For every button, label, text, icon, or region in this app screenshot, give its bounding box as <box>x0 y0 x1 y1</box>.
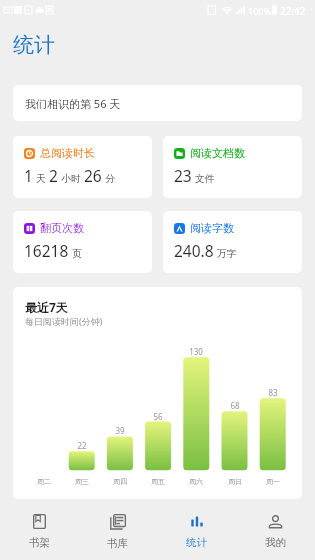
staticText: 天 <box>36 173 46 185</box>
staticText: 22 <box>77 440 87 451</box>
staticText: 阅读文档数 <box>190 146 245 160</box>
staticText: 83 <box>268 387 278 398</box>
staticText: 周五 <box>151 477 165 486</box>
other: 书库 <box>110 514 126 530</box>
staticText: 最近7天 <box>25 299 68 315</box>
staticText: 分 <box>105 173 115 185</box>
staticText: 16218 <box>24 240 69 261</box>
staticText: 小时 <box>61 173 81 185</box>
button[interactable]: 书架 <box>0 499 78 560</box>
staticText: 26 <box>84 165 102 186</box>
staticText: 39 <box>115 425 125 436</box>
staticText: 68 <box>230 400 240 411</box>
button[interactable]: 书库 <box>78 499 157 560</box>
staticText: 统计 <box>13 32 55 58</box>
staticText: 我的 <box>265 536 286 549</box>
button[interactable]: 翻页次数 <box>13 211 152 273</box>
button[interactable]: 我们相识的第 56 天 <box>13 85 302 121</box>
other: 书架 <box>33 514 46 529</box>
button[interactable]: 我的 <box>236 499 315 560</box>
button[interactable]: 阅读字数 <box>163 211 302 273</box>
staticText: 每日阅读时间(分钟) <box>25 315 103 327</box>
staticText: 22:42 <box>280 4 306 18</box>
other: 统计 <box>191 514 203 529</box>
staticText: 统计 <box>186 536 207 549</box>
other: 我的 <box>269 514 282 529</box>
staticText: 130 <box>189 346 203 357</box>
staticText: 周六 <box>189 477 203 486</box>
staticText: 周二 <box>37 477 51 486</box>
staticText: 100% <box>248 5 271 17</box>
staticText: 2 <box>49 165 58 186</box>
staticText: 书库 <box>107 537 128 550</box>
staticText: 翻页次数 <box>40 221 84 235</box>
button[interactable]: 总阅读时长 <box>13 136 152 198</box>
staticText: 56 <box>153 411 163 422</box>
staticText: 周三 <box>75 477 89 486</box>
staticText: 周一 <box>266 477 280 486</box>
staticText: 总阅读时长 <box>40 146 95 160</box>
staticText: 23 <box>174 165 192 186</box>
staticText: 万字 <box>217 248 237 260</box>
staticText: 页 <box>72 248 82 260</box>
staticText: 周四 <box>113 477 127 486</box>
button[interactable]: 统计 <box>157 499 236 560</box>
button[interactable]: 阅读文档数 <box>163 136 302 198</box>
staticText: 书架 <box>29 536 50 549</box>
staticText: 文件 <box>195 173 215 185</box>
staticText: 周日 <box>228 477 242 486</box>
staticText: 240.8 <box>174 240 214 261</box>
staticText: 我们相识的第 56 天 <box>25 96 121 111</box>
staticText: 1 <box>24 165 33 186</box>
staticText: 阅读字数 <box>190 221 234 235</box>
